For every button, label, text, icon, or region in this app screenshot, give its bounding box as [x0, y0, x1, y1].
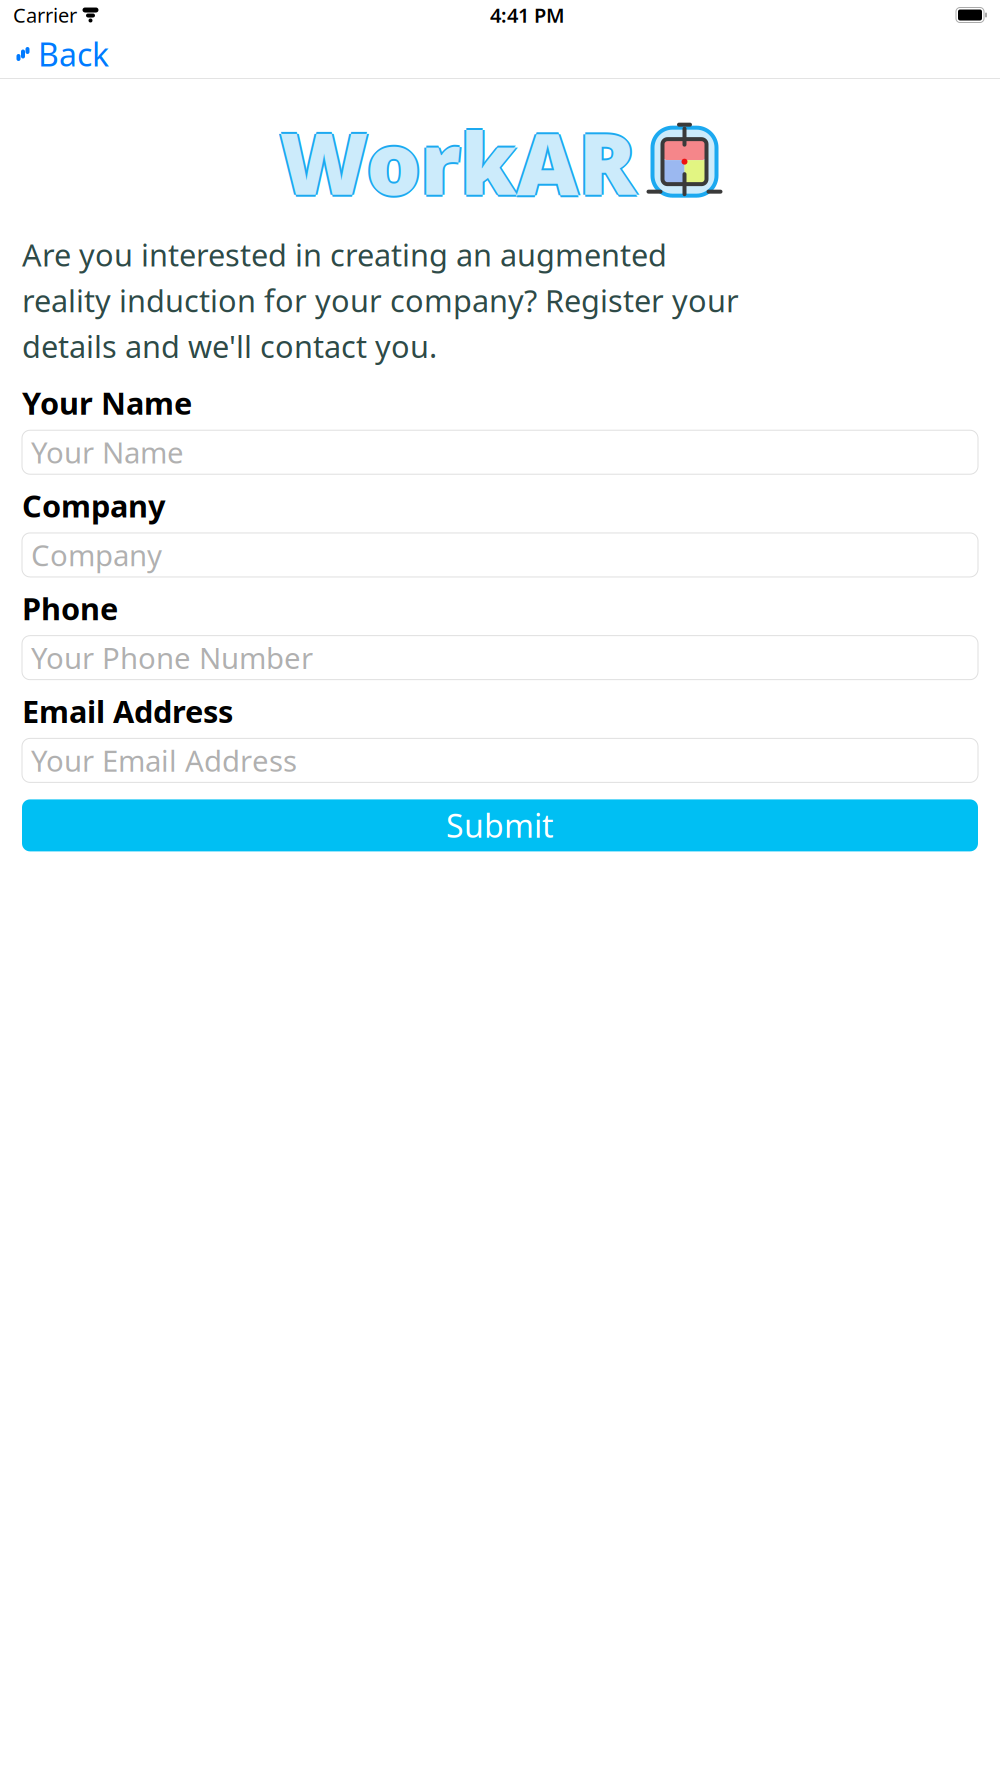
- staticText: WorkAR: [279, 107, 636, 220]
- staticText: 4:41 PM: [490, 2, 565, 28]
- staticText: Back: [38, 33, 109, 75]
- staticText: details and we'll contact you.: [22, 326, 437, 366]
- button[interactable]: Your Phone Number: [22, 636, 978, 680]
- button[interactable]: Your Name: [22, 430, 978, 474]
- staticText: Phone: [22, 588, 118, 629]
- staticText: Your Name: [31, 433, 184, 472]
- button[interactable]: Submit: [22, 799, 978, 851]
- staticText: WorkAR: [281, 105, 638, 218]
- staticText: Company: [31, 535, 162, 574]
- button[interactable]: Company: [22, 533, 978, 577]
- staticText: Email Address: [22, 691, 233, 731]
- staticText: Carrier: [13, 2, 77, 28]
- staticText: Your Phone Number: [31, 638, 313, 677]
- staticText: Company: [22, 485, 166, 526]
- staticText: WorkAR: [279, 105, 636, 218]
- staticText: Submit: [446, 804, 554, 847]
- staticText: Your Email Address: [31, 741, 297, 780]
- button[interactable]: Back: [0, 23, 125, 85]
- staticText: WorkAR: [279, 103, 636, 216]
- button[interactable]: Your Email Address: [22, 738, 978, 782]
- staticText: Your Name: [22, 382, 192, 423]
- staticText: Are you interested in creating an augmen…: [22, 234, 667, 275]
- staticText: WorkAR: [277, 105, 634, 218]
- staticText: reality induction for your company? Regi…: [22, 280, 739, 321]
